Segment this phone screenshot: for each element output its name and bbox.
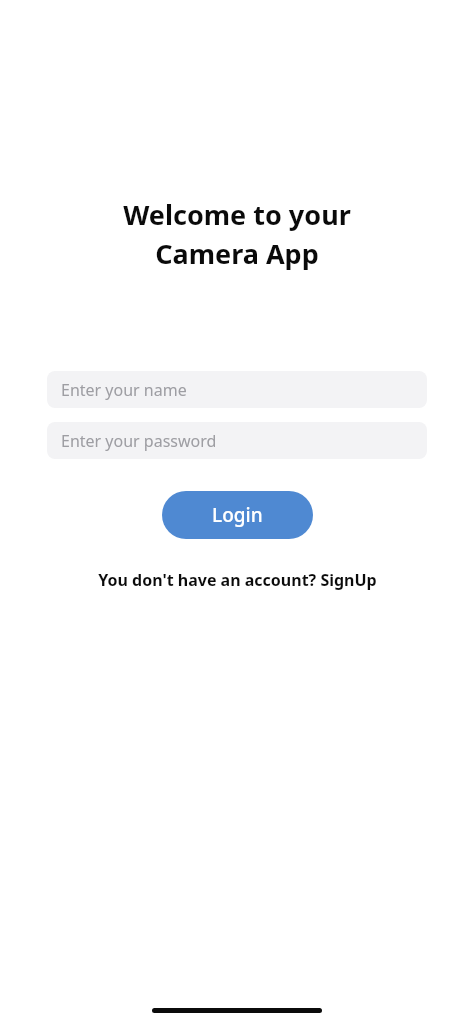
button[interactable]: Enter your password xyxy=(47,422,427,459)
staticText: Welcome to your Camera App xyxy=(0,196,474,272)
staticText: Enter your name xyxy=(61,379,187,401)
other: Home indicator xyxy=(152,1008,322,1013)
staticText: Enter your password xyxy=(61,430,217,452)
staticText: Login xyxy=(212,502,263,528)
button[interactable]: Login xyxy=(162,491,313,539)
staticText: You don't have an account? SignUp xyxy=(98,569,377,591)
button[interactable]: You don't have an account? SignUp xyxy=(92,565,383,595)
button[interactable]: Enter your name xyxy=(47,371,427,408)
